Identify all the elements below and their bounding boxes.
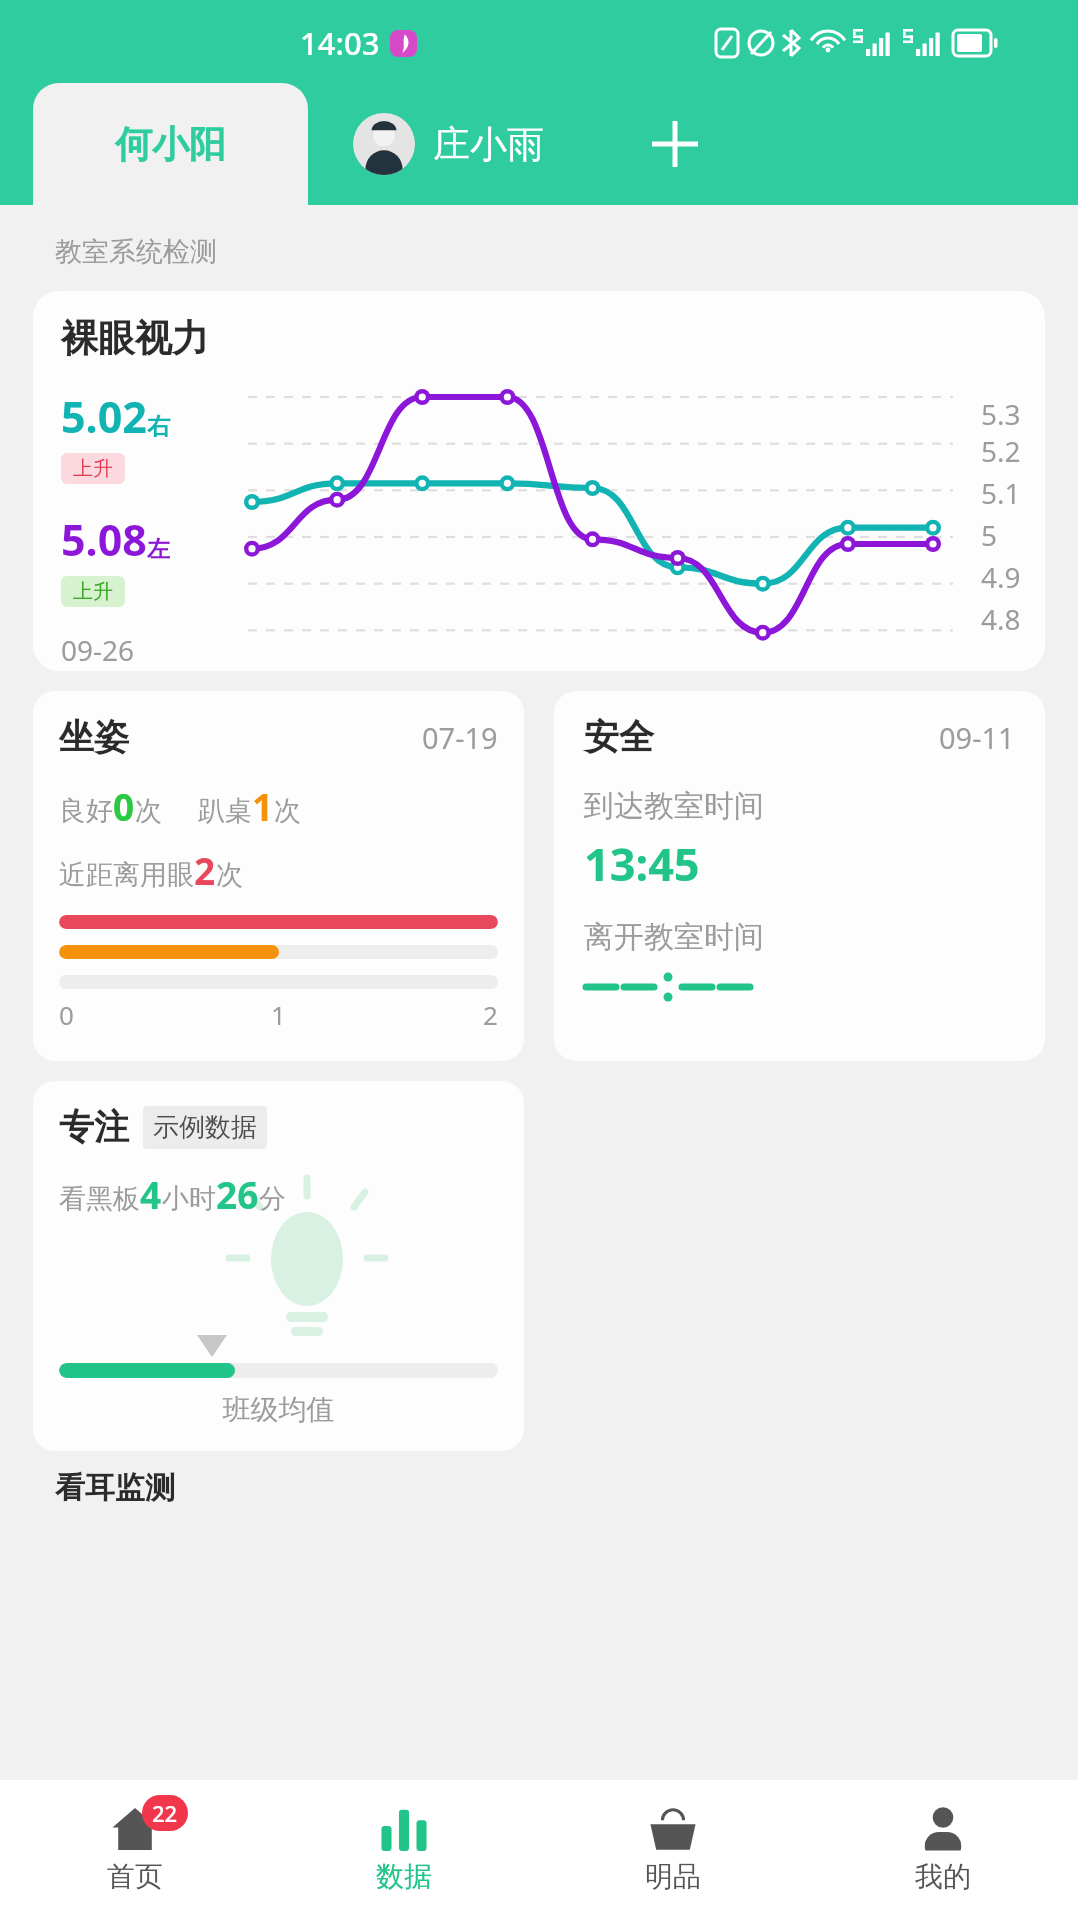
staticText: 5.02 [61, 387, 147, 446]
staticText: 庄小雨 [433, 121, 544, 168]
staticText: 14:03 [300, 22, 380, 64]
staticText: 良好 [59, 794, 113, 828]
staticText: 坐姿 [59, 715, 129, 759]
staticText: 26 [216, 1169, 259, 1219]
staticText: 09-26 [61, 631, 135, 669]
staticText: 0 [59, 997, 74, 1032]
staticText: 2 [483, 997, 498, 1032]
staticText: 看耳监测 [55, 1469, 175, 1507]
staticText: 我的 [915, 1859, 971, 1894]
staticText: 5.08 [61, 510, 147, 569]
button[interactable]: 何小阳 [33, 83, 308, 205]
staticText: 次 [135, 794, 162, 828]
staticText: 离开教室时间 [584, 918, 764, 956]
staticText: 首页 [107, 1859, 163, 1894]
staticText: 看黑板 [59, 1182, 140, 1216]
staticText: 上升 [73, 456, 113, 481]
staticText: 07-19 [422, 718, 498, 757]
staticText: 教室系统检测 [55, 235, 217, 269]
staticText: 班级均值 [59, 1392, 498, 1427]
button[interactable]: 庄小雨 [353, 83, 544, 205]
staticText: 09-11 [939, 718, 1015, 757]
staticText: 1 [252, 781, 274, 831]
button[interactable]: 裸眼视力 [33, 291, 1045, 671]
button[interactable]: 坐姿 [33, 691, 524, 1061]
staticText: 4 [140, 1169, 162, 1219]
staticText: 左 [147, 535, 170, 564]
button[interactable]: 专注 [33, 1081, 524, 1451]
button[interactable]: 22 [0, 1780, 269, 1918]
staticText: 13:45 [584, 833, 700, 894]
staticText: 5.2 [981, 432, 1021, 470]
staticText: 4.9 [981, 558, 1021, 596]
staticText: 5 [981, 516, 998, 554]
staticText: 到达教室时间 [584, 787, 764, 825]
staticText: 0 [113, 781, 135, 831]
staticText: 示例数据 [153, 1111, 257, 1144]
staticText: 何小阳 [115, 121, 226, 168]
staticText: 1 [271, 997, 286, 1032]
staticText: 分 [259, 1182, 286, 1216]
staticText: 2 [194, 845, 216, 895]
staticText: 5.3 [981, 395, 1021, 428]
button[interactable]: 明品 [538, 1780, 808, 1918]
button[interactable]: 我的 [808, 1780, 1078, 1918]
staticText: 趴桌 [198, 794, 252, 828]
staticText: 5.1 [981, 474, 1021, 512]
staticText: 上升 [73, 579, 113, 604]
staticText: 安全 [584, 715, 654, 759]
staticText: 明品 [645, 1859, 701, 1894]
staticText: 22 [152, 1798, 178, 1828]
staticText: 裸眼视力 [61, 315, 209, 362]
staticText: 小时 [162, 1182, 216, 1216]
staticText: 右 [147, 412, 170, 441]
button[interactable]: 安全 [554, 691, 1045, 1061]
staticText: 4.8 [981, 600, 1021, 638]
button[interactable]: Add child [629, 83, 721, 205]
staticText: 近距离用眼 [59, 858, 194, 892]
staticText: 次 [216, 858, 243, 892]
staticText: 数据 [376, 1859, 432, 1894]
staticText: 专注 [59, 1105, 129, 1149]
staticText: 次 [274, 794, 301, 828]
button[interactable]: 数据 [269, 1780, 538, 1918]
